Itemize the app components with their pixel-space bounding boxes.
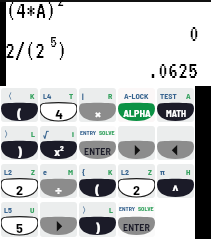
staticText: ÷: [55, 181, 62, 198]
button[interactable]: 4: [40, 88, 77, 122]
button[interactable]: MATH: [157, 88, 194, 122]
staticText: 2/(2: [5, 38, 46, 63]
button[interactable]: 2: [1, 164, 38, 198]
staticText: L: [109, 205, 113, 215]
staticText: A-LOCK: [124, 91, 149, 101]
staticText: L4: [43, 91, 52, 101]
staticText: ALPHA: [123, 107, 151, 119]
staticText: 2: [16, 181, 23, 198]
staticText: √: [43, 129, 50, 139]
staticText: M: [68, 167, 74, 177]
staticText: e: [43, 167, 47, 177]
staticText: Z: [148, 167, 152, 177]
staticText: L5: [4, 205, 12, 215]
staticText: H: [186, 167, 191, 177]
staticText: (: [95, 181, 100, 198]
button[interactable]: ×: [79, 88, 116, 122]
staticText: 5: [50, 33, 58, 51]
staticText: L2: [121, 167, 129, 177]
staticText: SOLVE: [138, 205, 154, 212]
button[interactable]: ): [1, 126, 38, 160]
staticText: ): [57, 38, 68, 63]
staticText: ): [95, 219, 100, 236]
staticText: 〈: [4, 91, 12, 101]
staticText: ): [17, 143, 22, 160]
staticText: L2: [4, 167, 12, 177]
button[interactable]: ALPHA: [118, 88, 155, 122]
staticText: SOLVE: [99, 129, 115, 136]
staticText: ENTER: [123, 221, 150, 233]
button[interactable]: ÷: [40, 164, 77, 198]
staticText: {: [82, 167, 85, 177]
staticText: 〉: [82, 205, 90, 215]
staticText: ^: [172, 181, 179, 198]
staticText: R: [108, 91, 113, 101]
staticText: 2: [57, 0, 65, 10]
staticText: T: [69, 91, 74, 101]
button[interactable]: ENTER: [79, 126, 116, 160]
staticText: K: [30, 91, 35, 101]
staticText: ENTRY: [119, 205, 136, 212]
staticText: 5: [16, 219, 23, 236]
staticText: .0625: [148, 58, 199, 83]
button[interactable]: 5: [1, 202, 38, 237]
staticText: MATH: [166, 108, 186, 119]
button[interactable]: (: [1, 88, 38, 122]
button[interactable]: x²: [40, 126, 77, 160]
button[interactable]: Left: [157, 126, 194, 160]
staticText: ENTRY: [80, 129, 97, 136]
staticText: TEST: [160, 91, 177, 101]
staticText: K: [108, 167, 113, 177]
staticText: ENTER: [84, 145, 111, 157]
staticText: L: [31, 129, 35, 139]
button[interactable]: (: [79, 164, 116, 198]
button[interactable]: ): [79, 202, 116, 237]
staticText: 0: [189, 21, 200, 46]
staticText: |: [82, 91, 84, 101]
button[interactable]: Right: [118, 126, 155, 160]
button[interactable]: ^: [157, 164, 194, 198]
staticText: Z: [31, 167, 35, 177]
button[interactable]: ENTER: [118, 202, 155, 237]
staticText: U: [30, 205, 35, 215]
staticText: (4*A): [6, 0, 57, 23]
staticText: ×: [95, 105, 101, 122]
button[interactable]: 2: [118, 164, 155, 198]
staticText: 4: [55, 105, 63, 122]
staticText: A: [186, 91, 191, 101]
button[interactable]: Right: [40, 202, 77, 237]
staticText: 〉: [4, 129, 12, 139]
staticText: i: [72, 129, 74, 139]
staticText: 2: [133, 181, 140, 198]
staticText: π: [160, 167, 165, 177]
staticText: x²: [54, 144, 64, 158]
staticText: (: [17, 105, 22, 122]
